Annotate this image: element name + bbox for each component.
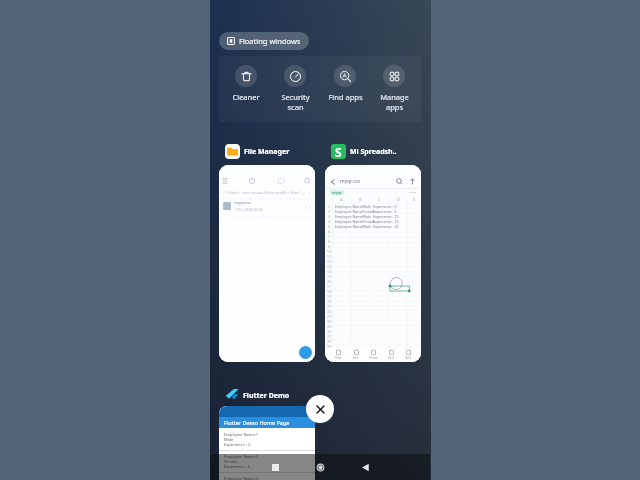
staticText: 23 [327,314,331,319]
staticText: Filter [335,356,342,360]
staticText: Employee NameMale [335,204,371,209]
staticText: Find [388,356,394,360]
button[interactable]: Back [352,454,378,480]
staticText: 9 [328,244,330,249]
staticText: 24 [327,319,331,324]
staticText: 11 [327,254,331,259]
staticText: File Manager [244,147,290,157]
staticText: 13 [327,264,331,269]
staticText: Find apps [328,92,363,102]
staticText: 4 [328,219,330,224]
staticText: 20 [327,299,331,304]
staticText: Employee Name:2 [224,454,259,459]
staticText: 17 [327,284,331,289]
button[interactable]: < [219,165,315,362]
staticText: Split [405,356,411,360]
staticText: myqr.csv [234,200,251,206]
staticText: 7 [328,234,330,239]
button[interactable]: Home [307,454,333,480]
staticText: 10 [327,249,331,254]
staticText: 28 [327,339,331,344]
staticText: 26 [327,329,331,334]
staticText: Experience : 15 [373,219,399,224]
button[interactable]: Cleaner [223,56,269,102]
staticText: 18 [327,289,331,294]
staticText: Sort [353,356,359,360]
staticText: Experience : 20 [373,224,399,229]
staticText: < [223,189,226,195]
staticText: Flutter Demo [243,391,290,401]
staticText: 5 [328,224,330,229]
staticText: C [378,197,381,202]
staticText: Employee NameMale [335,224,371,229]
button[interactable]: Flutter Demo Home Page [219,406,315,480]
staticText: E [413,197,416,202]
staticText: A [340,197,343,202]
button[interactable]: Close all [306,395,334,423]
staticText: 27 [327,334,331,339]
staticText: Employee Name:3 [224,476,259,480]
staticText: / data / com.runbox.flutter.profile / fi… [227,190,306,195]
staticText: > [308,190,311,195]
button[interactable]: Split [405,350,411,360]
staticText: 12 [327,259,331,264]
staticText: B [359,197,362,202]
staticText: D [397,197,400,202]
staticText: 1 KB | 2024-05-16 [234,207,263,212]
staticText: Female [224,459,238,464]
staticText: Experience : 0 [373,204,397,209]
button[interactable]: Find [388,350,394,360]
staticText: 8 [328,239,330,244]
staticText: Manage apps [380,92,409,112]
button[interactable]: Find apps [322,56,368,102]
staticText: Cleaner [232,92,260,102]
staticText: Experience : 5 [373,209,397,214]
button[interactable]: Freeze [369,350,378,360]
button[interactable]: Manage apps [371,56,417,112]
staticText: Male [224,437,234,442]
button[interactable]: Security scan [272,56,318,112]
staticText: 21 [327,304,331,309]
staticText: Freeze [369,356,378,360]
staticText: 14 [327,269,331,274]
staticText: Employee NameFemale [335,209,375,214]
staticText: 3 [328,214,330,219]
staticText: Security scan [281,92,310,112]
staticText: Experience : 5 [224,464,251,469]
staticText: 19 [327,294,331,299]
button[interactable]: myqr.csv [325,165,421,362]
button[interactable]: Sort [353,350,359,360]
staticText: 25 [327,324,331,329]
staticText: 6 [328,229,330,234]
staticText: 1 [328,204,330,209]
button[interactable]: Filter [335,350,342,360]
button[interactable]: Add [299,346,312,359]
staticText: 29 [327,344,331,349]
staticText: myqr [332,190,342,195]
staticText: Floating windows [239,36,301,46]
staticText: Employee NameFemale [335,219,375,224]
staticText: myqr.csv [340,178,361,185]
staticText: Employee Name:1 [224,432,259,437]
staticText: 22 [327,309,331,314]
button[interactable]: Recents [262,454,288,480]
staticText: 2 [328,209,330,214]
staticText: Employee NameMale [335,214,371,219]
staticText: S [335,144,342,159]
staticText: Experience : 10 [373,214,399,219]
staticText: 15 [327,274,331,279]
staticText: Experience : 3 [224,442,251,447]
staticText: Mi Spreadsh.. [350,147,397,157]
staticText: 16 [327,279,331,284]
staticText: Flutter Demo Home Page [224,419,290,426]
button[interactable]: Floating windows [219,32,309,50]
